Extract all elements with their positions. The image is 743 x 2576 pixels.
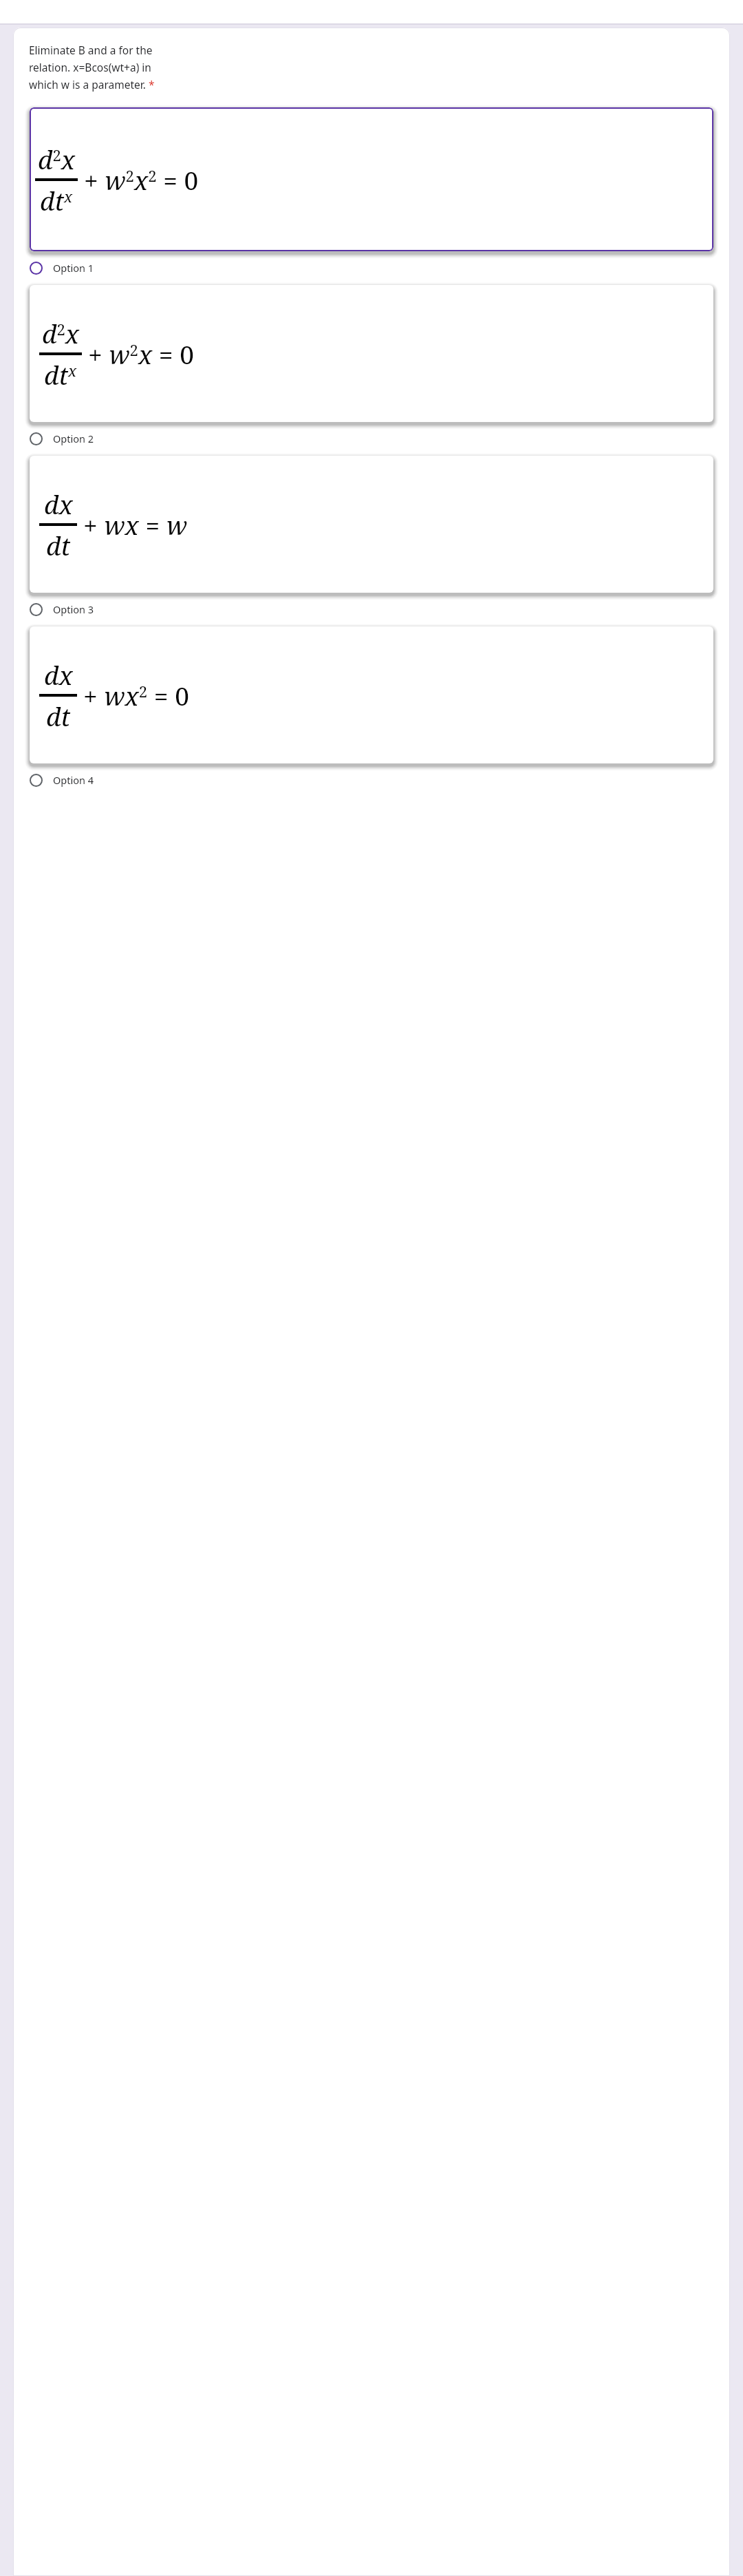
button[interactable]: dx [30,626,713,763]
staticText: dx [44,487,73,521]
staticText: d2x [38,142,76,176]
staticText: dt [46,528,71,562]
button[interactable]: dx [30,456,713,593]
staticText: Option 3 [53,602,94,616]
staticText: Option 2 [53,432,94,445]
staticText: + w2x2 = 0 [84,162,199,197]
staticText: Eliminate B and a for the relation. x=Bc… [29,43,155,92]
button[interactable]: Option 2 [13,425,730,452]
staticText: dtx [44,357,77,392]
staticText: d2x [42,316,80,350]
staticText: + wx2 = 0 [83,678,189,712]
staticText: dtx [40,183,73,218]
staticText: + w2x = 0 [88,337,194,371]
staticText: + wx = w [83,507,188,542]
button[interactable]: Option 1 [13,255,730,281]
button[interactable]: Option 3 [13,596,730,622]
button[interactable]: Option 4 [13,767,730,793]
staticText: dx [44,657,73,692]
button[interactable]: d2x [30,107,713,251]
button[interactable]: d2x [30,285,713,422]
staticText: Option 1 [53,261,94,275]
staticText: Option 4 [53,773,94,787]
staticText: dt [46,699,71,733]
